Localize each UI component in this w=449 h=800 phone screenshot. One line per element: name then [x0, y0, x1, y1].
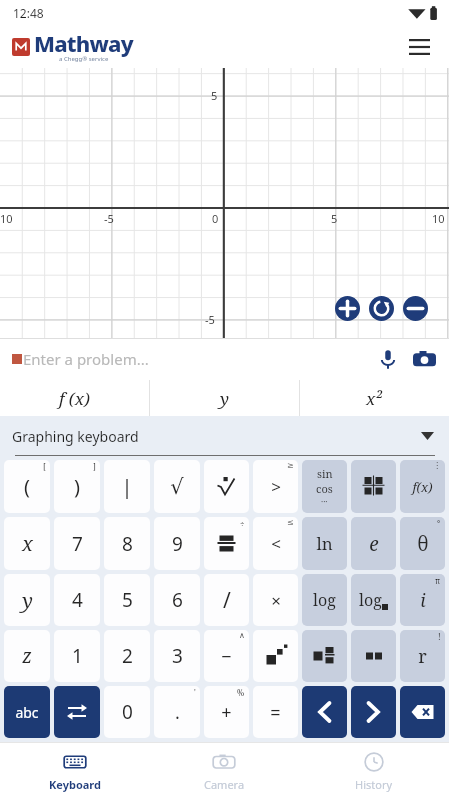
- button[interactable]: ln: [302, 517, 347, 570]
- staticText: log: [313, 589, 336, 611]
- button[interactable]: Move left: [302, 686, 347, 738]
- button[interactable]: trig functions: [302, 460, 347, 513]
- button[interactable]: Zoom in: [335, 296, 360, 321]
- button[interactable]: √: [154, 460, 200, 513]
- staticText: 5: [122, 587, 133, 613]
- button[interactable]: History: [299, 742, 449, 800]
- button[interactable]: 4: [54, 574, 100, 626]
- staticText: -5: [104, 211, 114, 226]
- button[interactable]: ×: [253, 574, 298, 626]
- staticText: Keyboard: [49, 777, 101, 792]
- button[interactable]: power: [253, 630, 298, 682]
- button[interactable]: |: [104, 460, 150, 513]
- button[interactable]: +: [204, 686, 249, 738]
- staticText: 5: [211, 88, 218, 103]
- button[interactable]: matrix: [351, 460, 396, 513]
- button[interactable]: /: [204, 574, 249, 626]
- staticText: ···: [321, 496, 328, 507]
- staticText: ]: [93, 461, 96, 472]
- staticText: 10: [0, 211, 13, 226]
- staticText: =: [270, 700, 281, 725]
- staticText: 6: [172, 587, 183, 613]
- button[interactable]: .: [154, 686, 200, 738]
- staticText: 12:48: [13, 5, 44, 21]
- button[interactable]: e: [351, 517, 396, 570]
- button[interactable]: Graphing keyboard: [0, 416, 449, 456]
- staticText: f (x): [59, 387, 90, 410]
- button[interactable]: nth root: [204, 460, 249, 513]
- button[interactable]: 6: [154, 574, 200, 626]
- button[interactable]: −: [204, 630, 249, 682]
- button[interactable]: fraction: [204, 517, 249, 570]
- button[interactable]: log base: [351, 574, 396, 626]
- button[interactable]: =: [253, 686, 298, 738]
- staticText: z: [22, 643, 32, 669]
- button[interactable]: interval: [351, 630, 396, 682]
- staticText: e: [369, 531, 379, 557]
- button[interactable]: mixed fraction: [302, 630, 347, 682]
- staticText: log: [359, 589, 382, 611]
- button[interactable]: Voice input: [373, 344, 403, 374]
- button[interactable]: 3: [154, 630, 200, 682]
- staticText: θ: [417, 531, 429, 557]
- staticText: ×: [271, 589, 281, 612]
- button[interactable]: y: [150, 380, 299, 416]
- button[interactable]: Move right: [351, 686, 396, 738]
- button[interactable]: 0: [104, 686, 150, 738]
- button[interactable]: 7: [54, 517, 100, 570]
- button[interactable]: 2: [104, 630, 150, 682]
- button[interactable]: θ: [400, 517, 445, 570]
- staticText: ≤: [287, 518, 294, 527]
- staticText: i: [420, 588, 426, 613]
- staticText: ÷: [240, 518, 245, 529]
- staticText: y: [22, 587, 33, 614]
- button[interactable]: 5: [104, 574, 150, 626]
- button[interactable]: z: [4, 630, 50, 682]
- staticText: 2: [122, 643, 133, 669]
- button[interactable]: <: [253, 517, 298, 570]
- button[interactable]: 9: [154, 517, 200, 570]
- button[interactable]: (: [4, 460, 50, 513]
- staticText: cos: [316, 481, 333, 496]
- button[interactable]: x²: [300, 380, 449, 416]
- staticText: History: [355, 777, 393, 792]
- button[interactable]: Keyboard: [0, 742, 149, 800]
- button[interactable]: log: [302, 574, 347, 626]
- button[interactable]: i: [400, 574, 445, 626]
- staticText: Graphing keyboard: [12, 427, 139, 446]
- button[interactable]: y: [4, 574, 50, 626]
- button[interactable]: x: [4, 517, 50, 570]
- staticText: ln: [316, 532, 333, 555]
- button[interactable]: Menu: [399, 27, 439, 67]
- staticText: |: [121, 473, 133, 500]
- button[interactable]: abc: [4, 686, 50, 738]
- button[interactable]: Enter a problem...: [12, 349, 149, 369]
- button[interactable]: f (x): [0, 380, 149, 416]
- staticText: -5: [205, 312, 215, 327]
- staticText: sin: [317, 466, 333, 481]
- staticText: 4: [72, 587, 83, 613]
- button[interactable]: Delete: [400, 686, 445, 738]
- staticText: ⋮: [433, 461, 441, 470]
- button[interactable]: ): [54, 460, 100, 513]
- button[interactable]: Camera: [408, 343, 440, 375]
- staticText: abc: [15, 703, 39, 722]
- staticText: (: [24, 473, 30, 500]
- staticText: f(x): [412, 478, 433, 496]
- staticText: r: [418, 644, 427, 669]
- staticText: 3: [172, 643, 183, 669]
- staticText: Camera: [204, 777, 245, 792]
- staticText: !: [438, 631, 441, 642]
- staticText: 1: [72, 643, 83, 669]
- button[interactable]: 8: [104, 517, 150, 570]
- button[interactable]: >: [253, 460, 298, 513]
- button[interactable]: Camera: [149, 742, 299, 800]
- button[interactable]: Zoom out: [403, 296, 428, 321]
- button[interactable]: r: [400, 630, 445, 682]
- button[interactable]: Reset zoom: [369, 296, 394, 321]
- button[interactable]: switch keyboard: [54, 686, 100, 738]
- staticText: ∧: [239, 631, 245, 640]
- staticText: x: [22, 530, 33, 557]
- button[interactable]: f(x): [400, 460, 445, 513]
- button[interactable]: 1: [54, 630, 100, 682]
